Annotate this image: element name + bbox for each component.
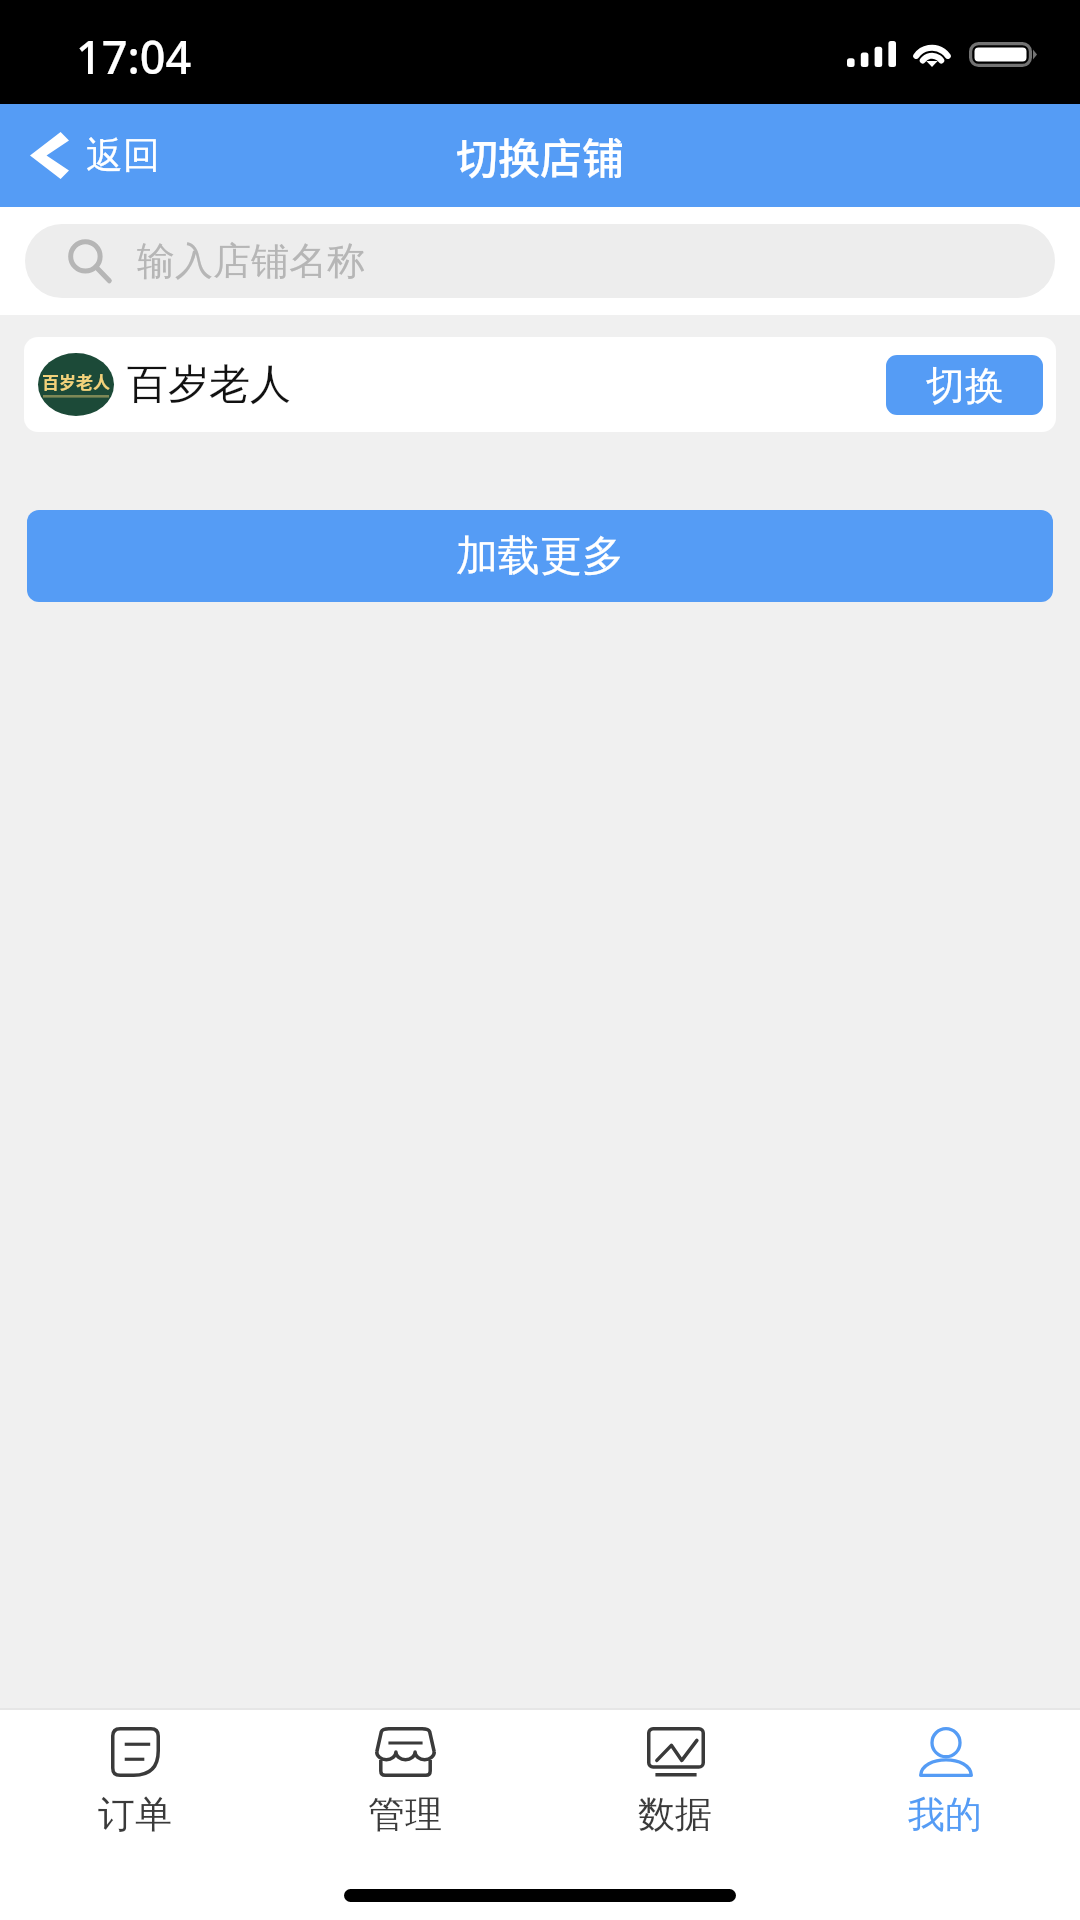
staticText: 百岁老人 bbox=[127, 359, 291, 411]
staticText: 输入店铺名称 bbox=[137, 237, 365, 285]
button[interactable]: 数据 bbox=[540, 1710, 810, 1850]
staticText: 管理 bbox=[368, 1791, 442, 1838]
other: 电量 bbox=[969, 42, 1038, 67]
other: 信号 bbox=[847, 41, 896, 67]
staticText: 百岁老人 bbox=[42, 369, 110, 394]
button[interactable]: 订单 bbox=[0, 1710, 270, 1850]
button[interactable]: 搜索 bbox=[25, 224, 1055, 298]
staticText: 数据 bbox=[638, 1791, 712, 1838]
other: 返回 bbox=[30, 132, 69, 179]
button[interactable]: 百岁老人 bbox=[24, 337, 1056, 432]
staticText: 加载更多 bbox=[456, 530, 624, 583]
staticText: 返回 bbox=[86, 132, 160, 179]
staticText: 切换 bbox=[926, 361, 1004, 410]
other: 无线网络 bbox=[911, 40, 953, 67]
staticText: 我的 bbox=[908, 1791, 982, 1838]
staticText: 17:04 bbox=[76, 26, 192, 87]
staticText: 订单 bbox=[98, 1791, 172, 1838]
staticText: 切换店铺 bbox=[456, 125, 625, 186]
button[interactable]: 我的 bbox=[810, 1710, 1080, 1850]
other: 搜索 bbox=[67, 238, 113, 284]
button[interactable]: 管理 bbox=[270, 1710, 540, 1850]
button[interactable]: 切换 bbox=[886, 355, 1043, 415]
button[interactable]: 返回 bbox=[0, 120, 184, 191]
button[interactable]: 加载更多 bbox=[27, 510, 1053, 602]
